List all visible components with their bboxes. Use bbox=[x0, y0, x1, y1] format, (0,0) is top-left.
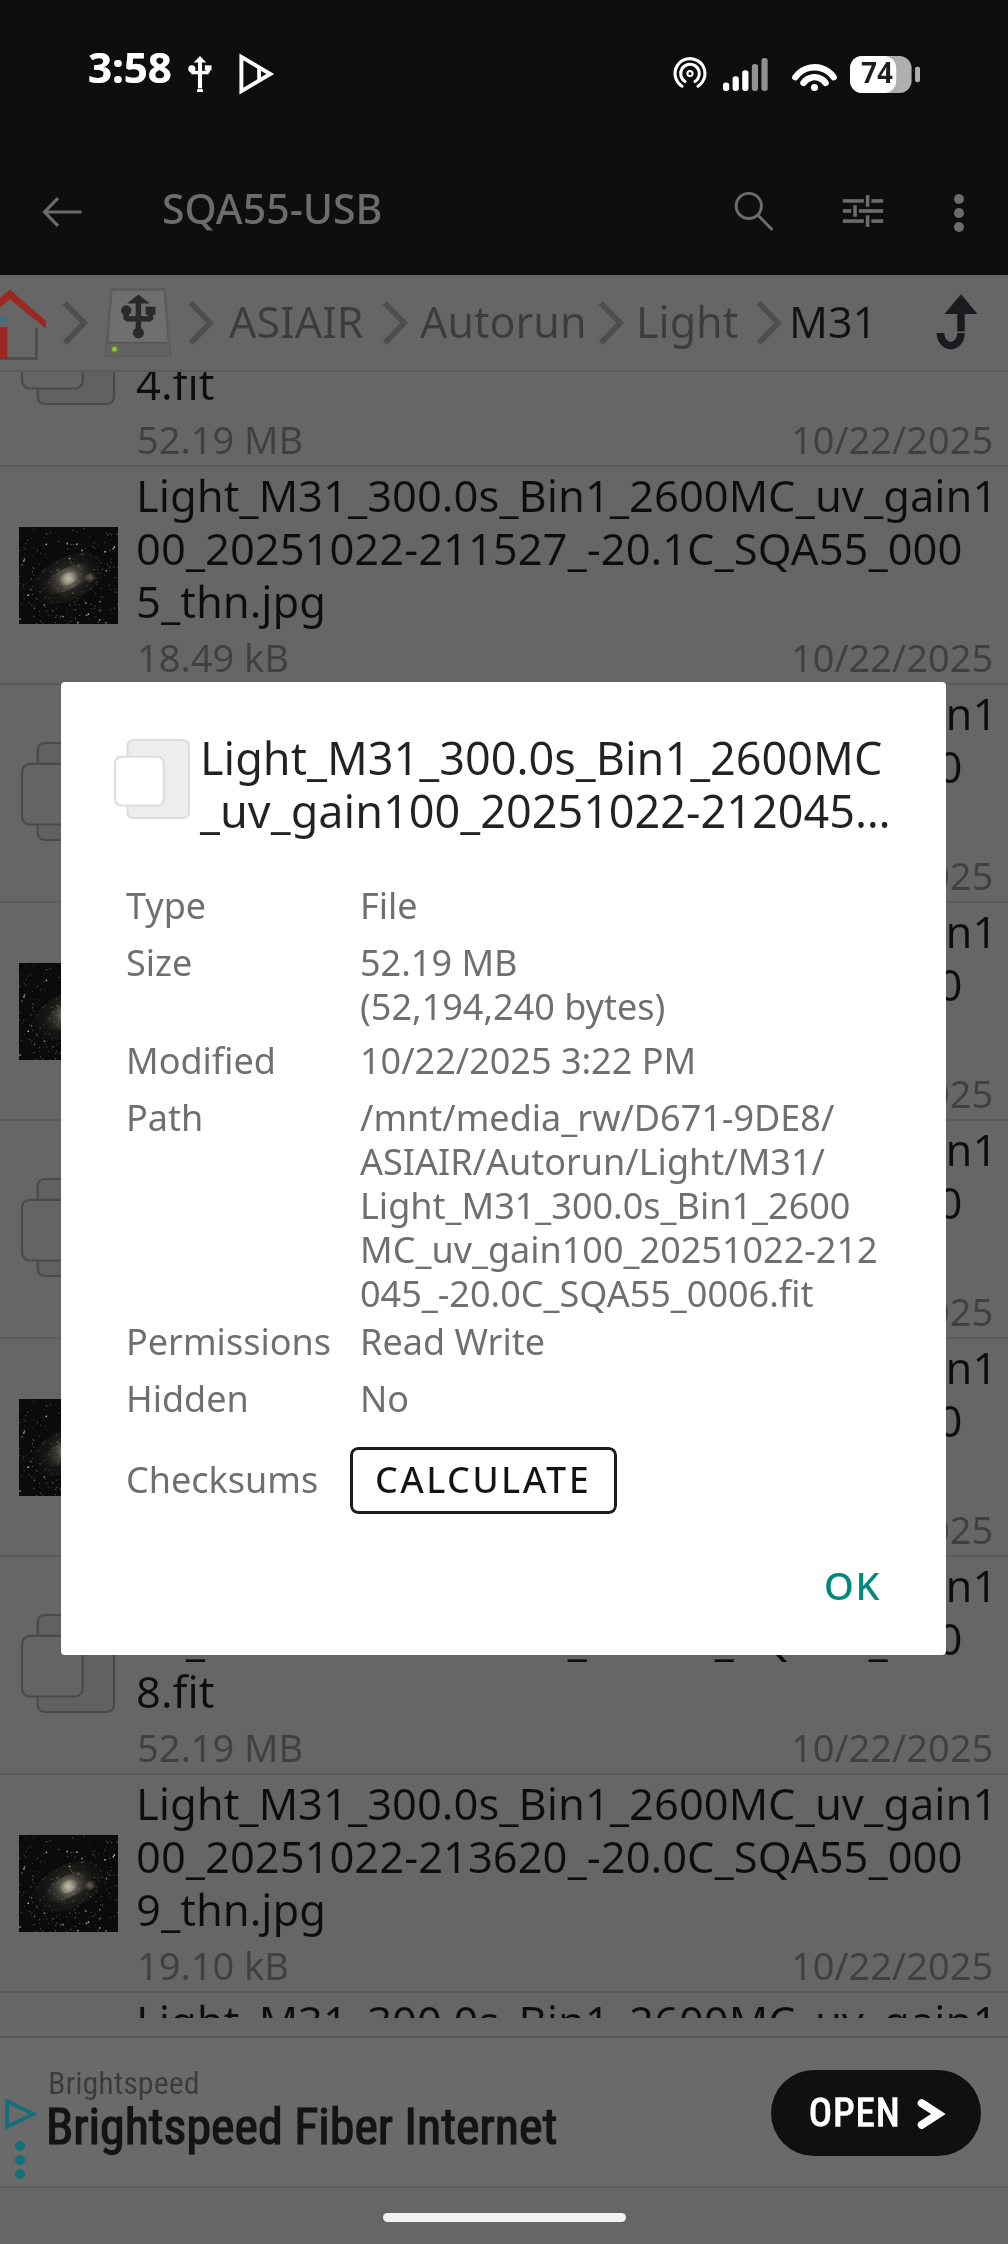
staticText: SQA55-USB bbox=[162, 186, 383, 234]
staticText: 52.19 MB (52,194,240 bytes) bbox=[360, 942, 666, 1030]
button[interactable]: Autorun bbox=[412, 291, 595, 357]
staticText: Permissions bbox=[126, 1321, 331, 1365]
button[interactable]: Light_M31_300.0s_Bin1_2600MC_uv_gain1 00… bbox=[0, 1773, 1008, 1991]
staticText: Size bbox=[126, 942, 193, 986]
staticText: Light bbox=[636, 299, 739, 349]
button[interactable]: Light_M31_300.0s_Bin1_2600MC_uv_gain1 00… bbox=[0, 1337, 1008, 1555]
button[interactable]: Light_M31_300.0s_Bin1_2600MC_uv_gain1 00… bbox=[0, 901, 1008, 1119]
staticText: CALCULATE bbox=[375, 1460, 592, 1502]
button[interactable]: USB storage bbox=[100, 285, 176, 361]
staticText: Brightspeed bbox=[48, 2064, 200, 2102]
staticText: 10/22/2025 bbox=[791, 419, 994, 464]
button[interactable]: Light_M31_300.0s_Bin1_2600MC_uv_gain1 00… bbox=[0, 1555, 1008, 1773]
staticText: 18.95 kB bbox=[137, 1073, 290, 1118]
staticText: 52.19 MB bbox=[137, 1727, 304, 1772]
staticText: 10/22/2025 3:22 PM bbox=[360, 1040, 697, 1084]
button[interactable]: ASIAIR bbox=[221, 291, 372, 357]
button[interactable]: More options bbox=[911, 165, 1007, 261]
button[interactable]: Light_M31_300.0s_Bin1_2600MC_uv_gain1 00… bbox=[0, 372, 1008, 465]
button[interactable]: OPEN bbox=[771, 2070, 981, 2156]
button[interactable]: Brightspeed bbox=[0, 2036, 1008, 2188]
staticText: 74 bbox=[861, 58, 894, 90]
staticText: ASIAIR bbox=[229, 299, 364, 349]
staticText: 10/22/2025 bbox=[791, 855, 994, 900]
button[interactable]: Go to parent folder bbox=[915, 286, 991, 362]
staticText: 18.49 kB bbox=[137, 637, 290, 682]
staticText: OK bbox=[824, 1565, 882, 1609]
button[interactable]: M31 bbox=[781, 291, 886, 357]
staticText: 3:58 bbox=[88, 45, 172, 93]
staticText: Autorun bbox=[420, 299, 587, 349]
staticText: Light_M31_300.0s_Bin1_2600MC_uv_gain1 00… bbox=[136, 906, 998, 1065]
staticText: No bbox=[360, 1378, 410, 1422]
staticText: File bbox=[360, 885, 418, 929]
staticText: 19.10 kB bbox=[137, 1945, 290, 1990]
staticText: Read Write bbox=[360, 1321, 545, 1365]
staticText: 52.19 MB bbox=[137, 419, 304, 464]
staticText: 10/22/2025 bbox=[791, 1073, 994, 1118]
button[interactable]: Home folder bbox=[0, 288, 48, 360]
staticText: 52.19 MB bbox=[137, 855, 304, 900]
staticText: OPEN bbox=[809, 2091, 901, 2136]
button[interactable]: Light_M31_300.0s_Bin1_2600MC_uv_gain1 00… bbox=[0, 1119, 1008, 1337]
button[interactable]: OK bbox=[802, 1551, 904, 1623]
staticText: Light_M31_300.0s_Bin1_2600MC_uv_gain1 00… bbox=[136, 688, 998, 847]
staticText: Type bbox=[126, 885, 207, 929]
button[interactable]: Sort and view options bbox=[807, 155, 919, 267]
staticText: Checksums bbox=[126, 1459, 319, 1503]
staticText: Light_M31_300.0s_Bin1_2600MC_uv_gain1 00… bbox=[136, 470, 998, 629]
staticText: Modified bbox=[126, 1040, 276, 1084]
staticText: Light_M31_300.0s_Bin1_2600MC_uv_gain1 00… bbox=[136, 1124, 998, 1283]
staticText: Light_M31_300.0s_Bin1_2600MC _uv_gain100… bbox=[200, 733, 891, 839]
staticText: Light_M31_300.0s_Bin1_2600MC_uv_gain1 00… bbox=[136, 1778, 998, 1937]
staticText: 52.19 MB bbox=[137, 1291, 304, 1336]
button[interactable]: Light bbox=[628, 291, 747, 357]
staticText: 10/22/2025 bbox=[791, 1727, 994, 1772]
staticText: Hidden bbox=[126, 1378, 249, 1422]
staticText: Light_M31_300.0s_Bin1_2600MC_uv_gain1 00… bbox=[136, 1560, 998, 1719]
staticText: Light_M31_300.0s_Bin1_2600MC_uv_gain1 00… bbox=[136, 372, 998, 411]
staticText: M31 bbox=[789, 299, 878, 349]
button[interactable]: Search bbox=[697, 155, 809, 267]
button[interactable]: Light_M31_300.0s_Bin1_2600MC_uv_gain1 00… bbox=[0, 465, 1008, 683]
staticText: Light_M31_300.0s_Bin1_2600MC_uv_gain1 00… bbox=[136, 1996, 998, 2018]
staticText: 10/22/2025 bbox=[791, 637, 994, 682]
button[interactable]: Back bbox=[7, 156, 119, 268]
staticText: Light_M31_300.0s_Bin1_2600MC_uv_gain1 00… bbox=[136, 1342, 998, 1501]
button[interactable]: CALCULATE bbox=[350, 1447, 617, 1514]
staticText: /mnt/media_rw/D671-9DE8/ ASIAIR/Autorun/… bbox=[360, 1097, 878, 1317]
staticText: 10/22/2025 bbox=[791, 1945, 994, 1990]
button[interactable]: Light_M31_300.0s_Bin1_2600MC_uv_gain1 00… bbox=[0, 683, 1008, 901]
staticText: Path bbox=[126, 1097, 204, 1141]
staticText: Brightspeed Fiber Internet bbox=[46, 2098, 558, 2157]
button[interactable]: Light_M31_300.0s_Bin1_2600MC_uv_gain1 00… bbox=[0, 1991, 1008, 2018]
staticText: 10/22/2025 bbox=[791, 1509, 994, 1554]
staticText: 10/22/2025 bbox=[791, 1291, 994, 1336]
